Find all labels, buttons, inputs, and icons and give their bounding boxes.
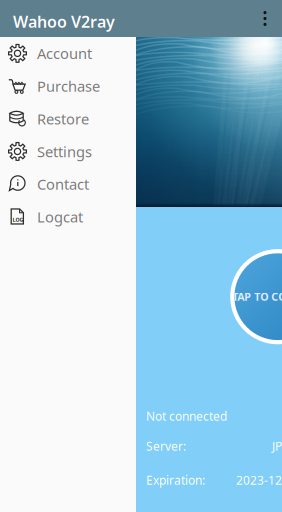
staticText: 2023-12-31 <box>236 472 282 488</box>
staticText: JP-01 <box>272 438 282 454</box>
button[interactable]: TAP TO CONNECT <box>229 248 282 346</box>
button[interactable]: More options <box>250 0 280 37</box>
staticText: Settings <box>37 142 92 161</box>
button[interactable]: Contact <box>0 168 136 200</box>
staticText: LOG <box>12 216 23 223</box>
staticText: Purchase <box>37 76 100 96</box>
staticText: Contact <box>37 174 89 194</box>
staticText: TAP TO CONNECT <box>232 290 282 304</box>
staticText: Logcat <box>37 207 83 227</box>
staticText: Restore <box>37 109 89 128</box>
button[interactable]: Account <box>0 37 136 70</box>
button[interactable]: Settings <box>0 135 136 168</box>
staticText: Wahoo V2ray <box>13 11 115 32</box>
staticText: Not connected <box>146 408 227 424</box>
button[interactable]: LOG <box>0 200 136 233</box>
button[interactable]: Restore <box>0 102 136 135</box>
staticText: Expiration: <box>146 472 205 488</box>
staticText: Account <box>37 44 92 63</box>
button[interactable]: Purchase <box>0 70 136 102</box>
staticText: Server: <box>146 438 186 454</box>
